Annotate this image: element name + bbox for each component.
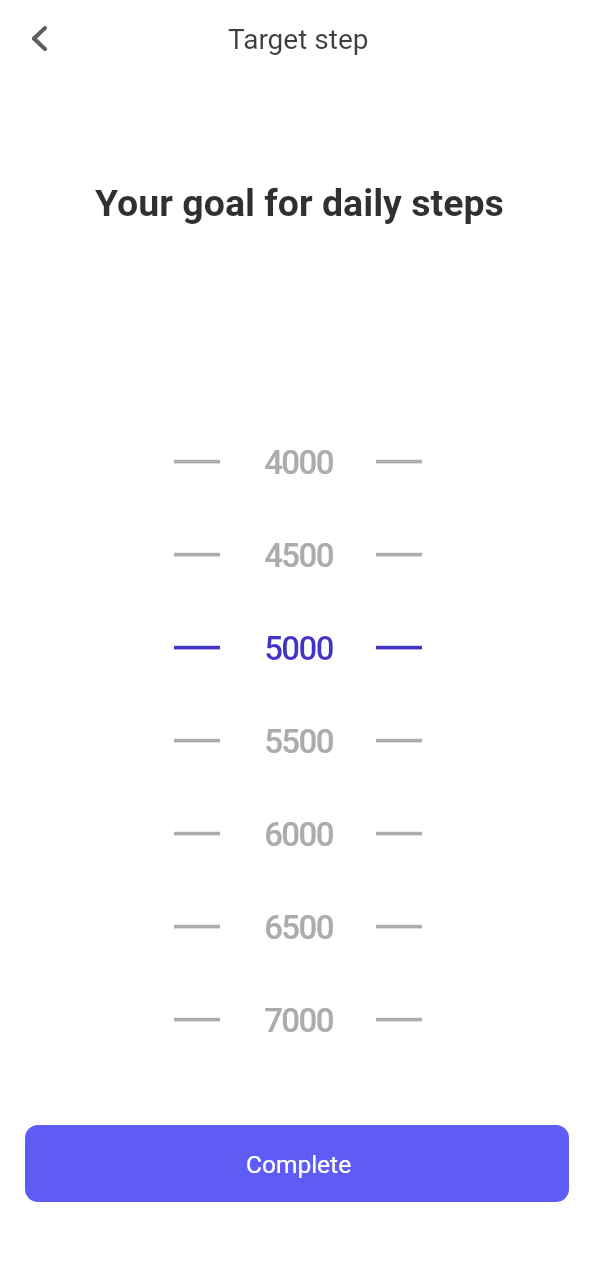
- staticText: 4500: [264, 536, 333, 575]
- button[interactable]: 4000: [0, 415, 594, 508]
- button[interactable]: 4500: [0, 508, 594, 601]
- staticText: 6500: [264, 908, 333, 947]
- button[interactable]: 5000: [0, 601, 594, 694]
- staticText: 6000: [264, 815, 333, 854]
- staticText: Target step: [228, 23, 369, 56]
- button[interactable]: Navigate back: [11, 10, 67, 66]
- staticText: 7000: [264, 1001, 333, 1040]
- button[interactable]: 6500: [0, 880, 594, 973]
- staticText: Complete: [246, 1150, 352, 1179]
- button[interactable]: 5500: [0, 694, 594, 787]
- button[interactable]: 6000: [0, 787, 594, 880]
- staticText: Your goal for daily steps: [95, 181, 504, 225]
- staticText: 5500: [264, 722, 333, 761]
- staticText: 4000: [264, 443, 333, 482]
- button[interactable]: Complete: [25, 1125, 569, 1202]
- button[interactable]: 7000: [0, 973, 594, 1066]
- staticText: 5000: [264, 629, 333, 668]
